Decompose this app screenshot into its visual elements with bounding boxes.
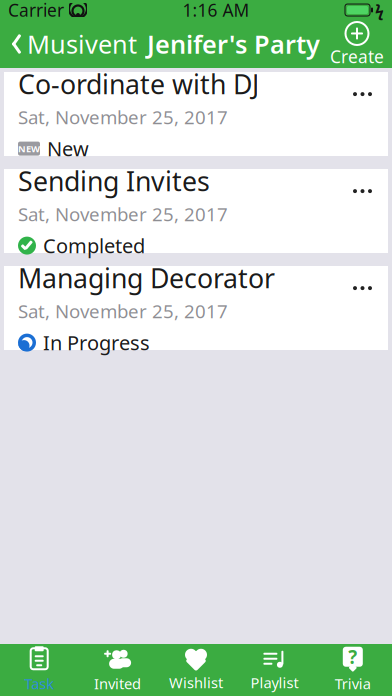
staticText: Co-ordinate with DJ bbox=[18, 66, 259, 101]
button[interactable]: ? bbox=[314, 644, 392, 696]
staticText: Managing Decorator bbox=[18, 260, 275, 295]
staticText: Playlist bbox=[250, 673, 298, 692]
staticText: New bbox=[47, 135, 89, 162]
staticText: Sat, November 25, 2017 bbox=[18, 104, 228, 129]
button[interactable]: Invited bbox=[78, 644, 157, 696]
staticText: Completed bbox=[43, 232, 145, 259]
button[interactable]: Co-ordinate with DJ bbox=[4, 72, 388, 156]
staticText: Invited bbox=[94, 674, 141, 693]
staticText: Task bbox=[24, 674, 54, 693]
staticText: Wishlist bbox=[169, 673, 223, 692]
button[interactable]: Sending Invites bbox=[4, 169, 388, 253]
button[interactable]: Task bbox=[0, 644, 78, 696]
staticText: Create bbox=[330, 45, 384, 68]
staticText: ϟ bbox=[375, 0, 384, 21]
staticText: 1:16 AM bbox=[182, 0, 249, 21]
staticText: Sat, November 25, 2017 bbox=[18, 201, 228, 226]
button[interactable]: Create bbox=[330, 20, 392, 68]
staticText: Musivent bbox=[27, 27, 137, 61]
staticText: Jenifer's Party bbox=[147, 27, 320, 61]
staticText: Sat, November 25, 2017 bbox=[18, 298, 228, 323]
staticText: In Progress bbox=[43, 329, 150, 356]
button[interactable]: Playlist bbox=[235, 644, 314, 696]
button[interactable]: Managing Decorator bbox=[4, 266, 388, 350]
staticText: Carrier bbox=[8, 0, 64, 21]
button[interactable]: Wishlist bbox=[157, 644, 235, 696]
staticText: Trivia bbox=[335, 674, 371, 693]
staticText: Sending Invites bbox=[18, 163, 210, 198]
staticText: NEW bbox=[18, 142, 40, 155]
staticText: ? bbox=[348, 644, 357, 669]
button[interactable]: Musivent bbox=[0, 21, 137, 67]
